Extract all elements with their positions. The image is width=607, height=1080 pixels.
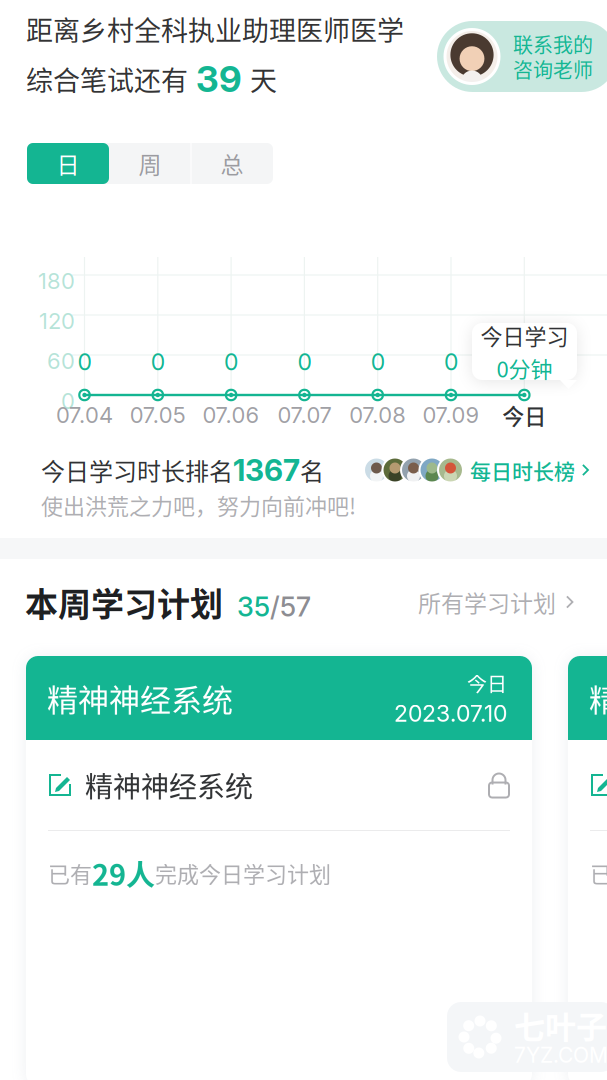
button[interactable]: 所有学习计划 xyxy=(418,583,574,621)
staticText: 29人 xyxy=(92,852,155,894)
staticText: /57 xyxy=(270,590,311,623)
staticText: 07.08 xyxy=(349,402,406,428)
staticText: 0分钟 xyxy=(496,352,552,384)
staticText: 0 xyxy=(77,348,91,376)
staticText: 07.06 xyxy=(203,402,260,428)
staticText: 0 xyxy=(371,348,385,376)
staticText: 已有 xyxy=(590,857,607,889)
staticText: 距离乡村全科执业助理医师医学 xyxy=(26,9,404,49)
button[interactable]: 周 xyxy=(109,143,191,184)
staticText: 0 xyxy=(61,388,75,414)
staticText: 所有学习计划 xyxy=(418,585,556,619)
staticText: 周 xyxy=(138,147,161,180)
staticText: 今日学习时长排名 xyxy=(41,453,233,487)
staticText: 07.04 xyxy=(56,402,113,428)
button[interactable]: 精神神经系统 xyxy=(26,656,532,1080)
staticText: 7YZ.COM xyxy=(514,1042,607,1068)
staticText: 咨询老师 xyxy=(513,54,593,83)
staticText: 完成今日学习计划 xyxy=(155,857,331,889)
staticText: 精神神经系统 xyxy=(589,676,607,720)
staticText: 精神神经系统 xyxy=(47,676,233,720)
staticText: 总 xyxy=(220,147,243,180)
staticText: 今日 xyxy=(502,399,546,431)
staticText: 07.05 xyxy=(130,402,186,428)
staticText: 1367 xyxy=(233,452,300,488)
staticText: 07.07 xyxy=(277,402,331,428)
staticText: 2023.07.10 xyxy=(394,700,507,727)
button[interactable]: 日 xyxy=(27,143,109,184)
staticText: 综合笔试还有 xyxy=(26,59,188,99)
staticText: 0 xyxy=(151,348,165,376)
staticText: 180 xyxy=(38,268,75,294)
staticText: 0 xyxy=(517,348,531,376)
staticText: 35 xyxy=(223,590,270,623)
staticText: 天 xyxy=(250,59,277,99)
staticText: 名 xyxy=(300,453,324,487)
staticText: 使出洪荒之力吧，努力向前冲吧! xyxy=(41,489,356,521)
staticText: 120 xyxy=(39,308,75,334)
staticText: 0 xyxy=(297,348,311,376)
button[interactable]: 精神神经系统 xyxy=(568,656,607,1080)
staticText: 每日时长榜 xyxy=(470,455,575,485)
button[interactable]: 联系我的 xyxy=(437,21,607,92)
button[interactable]: 每日时长榜 xyxy=(364,455,590,485)
staticText: 0 xyxy=(224,348,238,376)
staticText: 今日学习 xyxy=(480,319,568,351)
staticText: 日 xyxy=(56,147,79,180)
staticText: 已有 xyxy=(48,857,92,889)
staticText: 39 xyxy=(188,57,250,101)
staticText: 60 xyxy=(47,348,75,374)
staticText: 七叶子 xyxy=(514,1003,607,1047)
staticText: 精神神经系统 xyxy=(85,765,253,805)
staticText: 联系我的 xyxy=(513,29,593,58)
staticText: 今日 xyxy=(467,669,507,698)
staticText: 本周学习计划 xyxy=(25,578,223,626)
staticText: 0 xyxy=(444,348,458,376)
staticText: 07.09 xyxy=(422,402,479,428)
button[interactable]: 总 xyxy=(191,143,273,184)
